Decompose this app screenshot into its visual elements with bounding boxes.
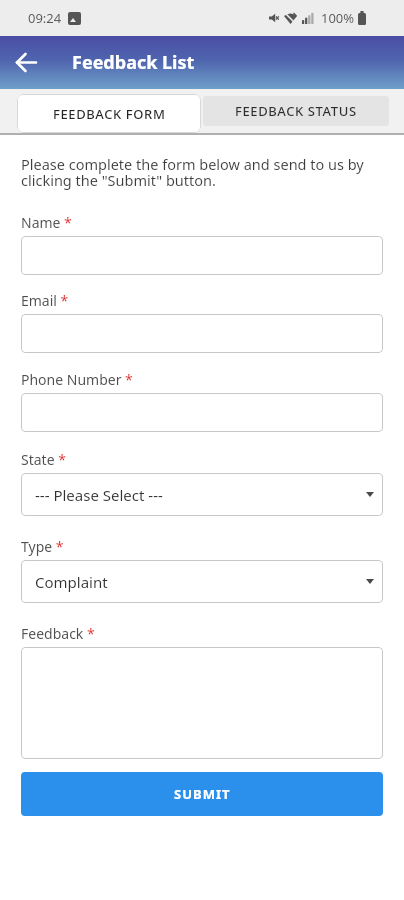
staticText: Feedback * [21, 624, 95, 643]
button[interactable] [21, 393, 383, 432]
staticText: Please complete the form below and send … [21, 154, 364, 191]
staticText: 100% [321, 9, 355, 27]
staticText: Name * [21, 213, 72, 232]
staticText: Feedback List [72, 50, 195, 75]
button[interactable]: Complaint [21, 560, 383, 603]
button[interactable] [21, 236, 383, 275]
button[interactable]: SUBMIT [21, 772, 383, 816]
staticText: SUBMIT [174, 785, 231, 803]
staticText: Type * [21, 537, 64, 556]
staticText: State * [21, 450, 66, 469]
button[interactable] [21, 647, 383, 759]
staticText: FEEDBACK FORM [53, 105, 166, 123]
button[interactable]: FEEDBACK FORM [17, 94, 201, 133]
button[interactable]: --- Please Select --- [21, 473, 383, 516]
button[interactable] [21, 314, 383, 353]
staticText: 09:24 [28, 9, 62, 27]
staticText: Phone Number * [21, 370, 133, 389]
button[interactable] [0, 36, 53, 89]
staticText: Complaint [35, 572, 108, 592]
staticText: FEEDBACK STATUS [235, 102, 357, 120]
staticText: --- Please Select --- [35, 485, 163, 505]
button[interactable]: FEEDBACK STATUS [203, 96, 389, 126]
staticText: Email * [21, 291, 69, 310]
